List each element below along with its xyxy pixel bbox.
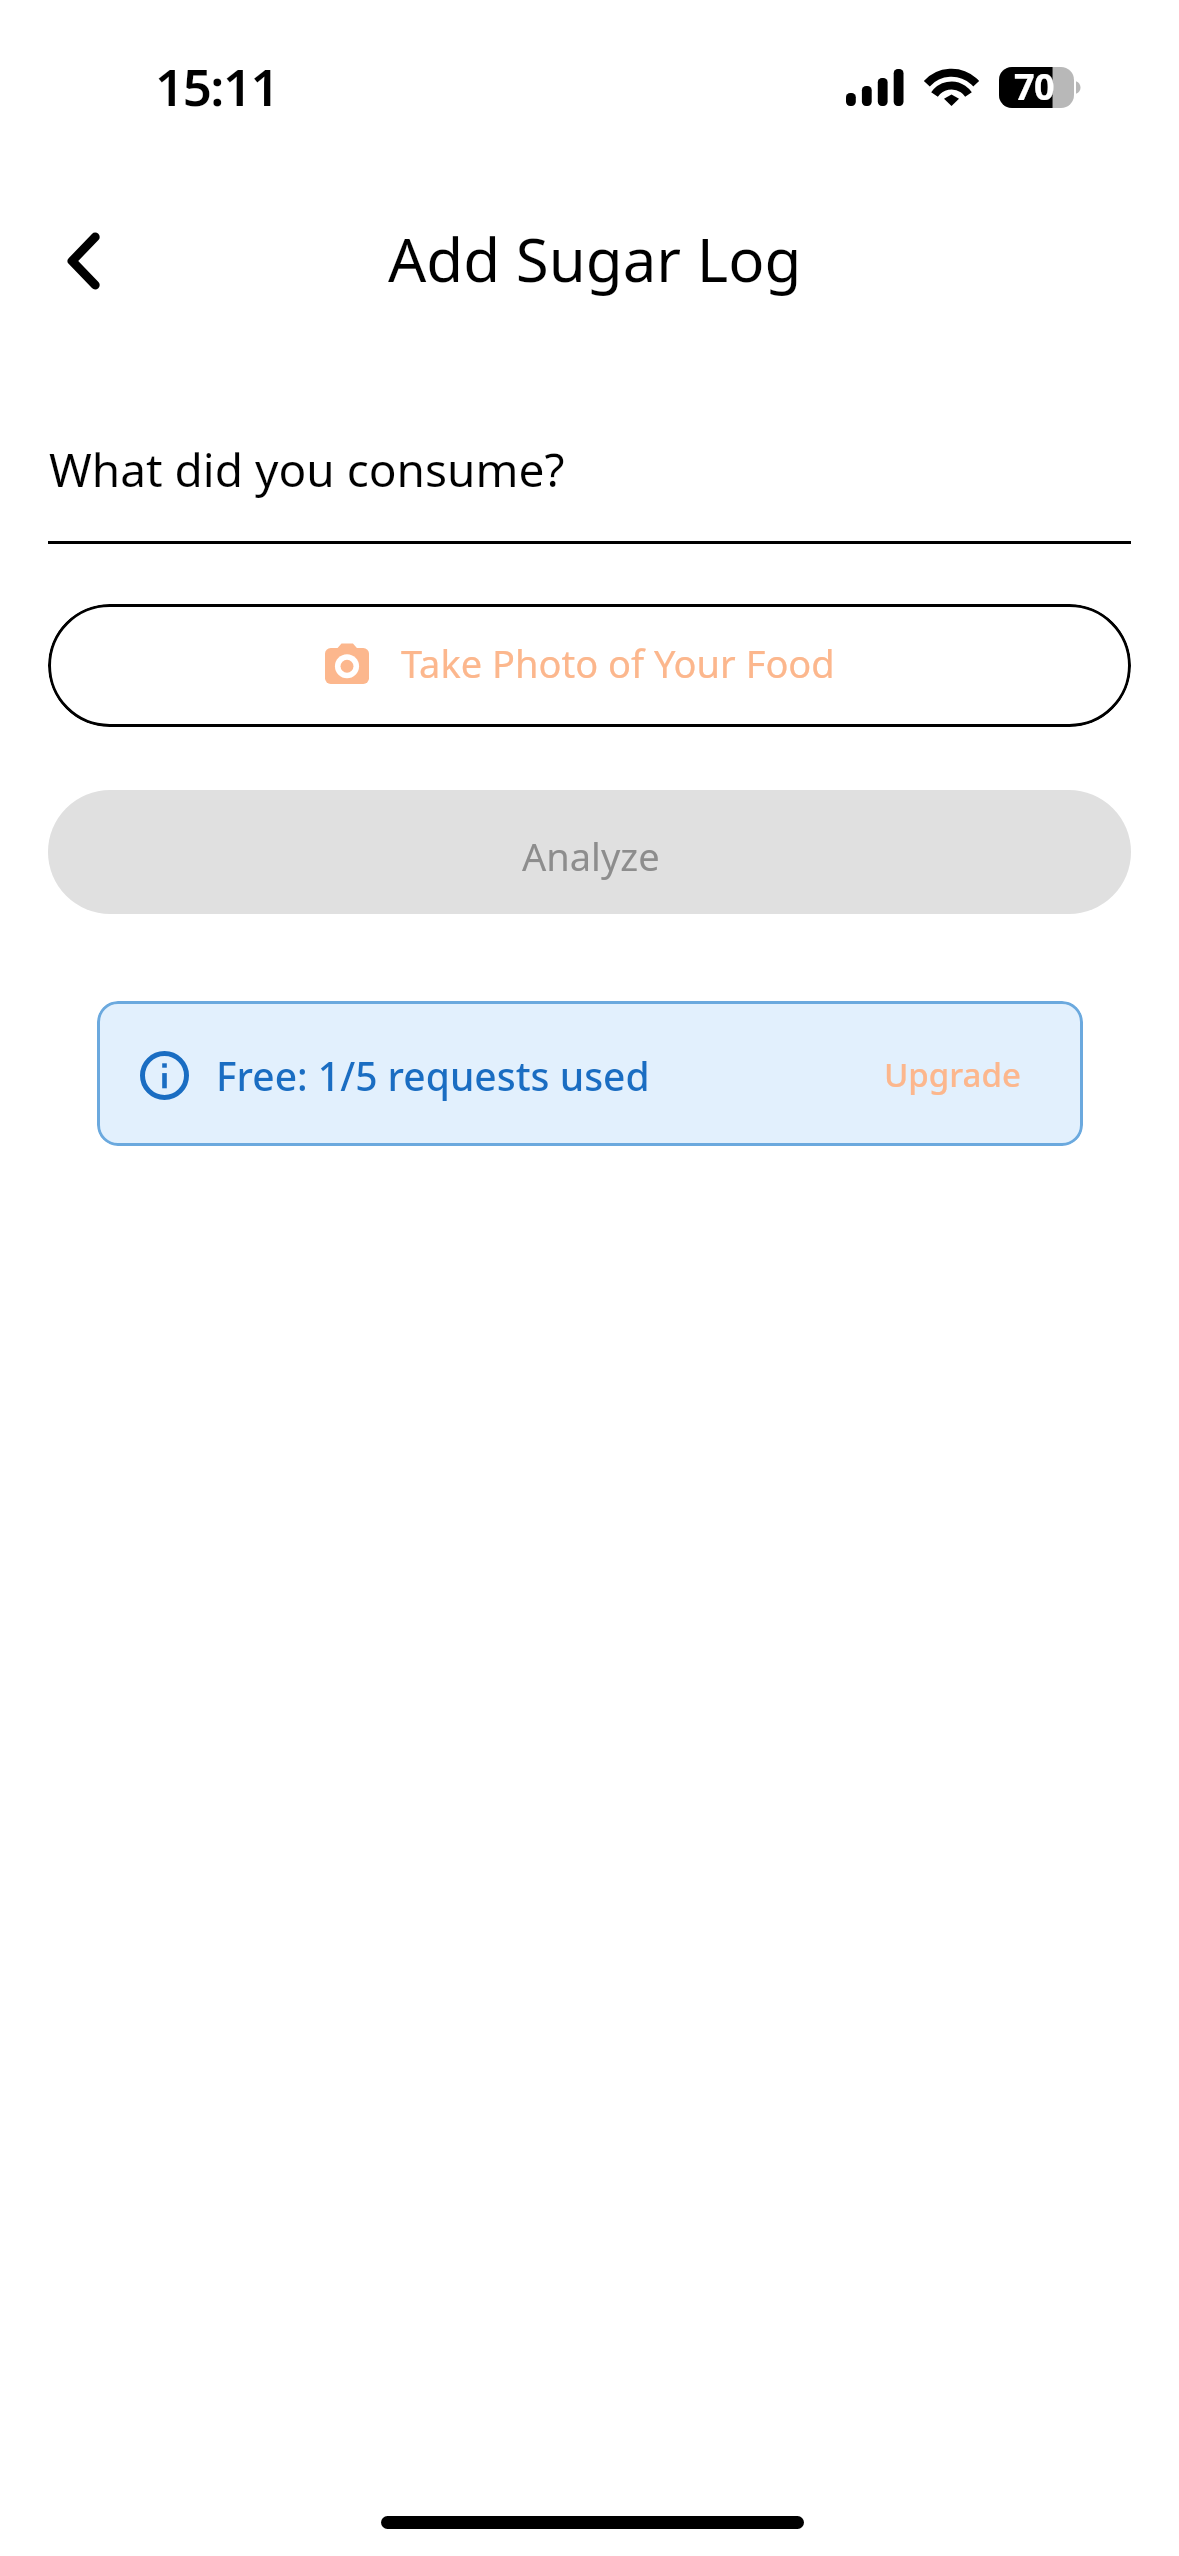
button[interactable]: Upgrade — [876, 1038, 1029, 1111]
staticText: Free: 1/5 requests used — [216, 1049, 650, 1102]
staticText: Take Photo of Your Food — [401, 637, 835, 689]
staticText: 70 — [1014, 62, 1055, 111]
button[interactable]: Take Photo of Your Food — [48, 604, 1131, 727]
staticText: What did you consume? — [49, 438, 565, 501]
staticText: Add Sugar Log — [388, 218, 802, 300]
button[interactable]: Analyze — [48, 790, 1131, 914]
other: Battery 70 percent — [999, 67, 1074, 116]
other: Wi-Fi — [921, 60, 983, 110]
other: Cellular signal — [846, 68, 906, 106]
staticText: 15:11 — [155, 51, 279, 120]
button[interactable]: Back — [45, 213, 121, 289]
staticText: Upgrade — [884, 1052, 1021, 1097]
staticText: Analyze — [522, 830, 660, 882]
